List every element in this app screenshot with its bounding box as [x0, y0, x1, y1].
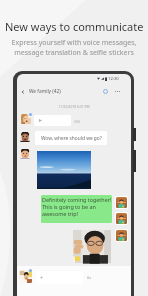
button[interactable] [36, 271, 83, 284]
button[interactable] [73, 230, 111, 263]
staticText: New ways to communicate [5, 19, 144, 34]
button[interactable] [34, 115, 71, 126]
button[interactable]: Definitely coming together! This is goin… [41, 195, 112, 223]
button[interactable]: Video call [101, 87, 110, 96]
staticText: 0:08 [74, 120, 80, 124]
button[interactable] [116, 230, 127, 241]
staticText: Aa [87, 275, 92, 280]
button[interactable] [116, 197, 127, 208]
staticText: 12:30 [108, 76, 119, 81]
button[interactable] [116, 213, 127, 224]
button[interactable]: Wow, where should we go? [35, 131, 107, 145]
button[interactable]: Back [19, 88, 27, 96]
staticText: Wow, where should we go? [41, 135, 102, 142]
button[interactable] [37, 151, 91, 189]
button[interactable]: More options [113, 87, 122, 96]
staticText: 11/22/2018 6:31 PM [17, 104, 131, 108]
staticText: Definitely coming together! This is goin… [42, 196, 112, 217]
staticText: Express yourself with voice messages, me… [5, 38, 143, 58]
staticText: We family (42) [29, 88, 61, 95]
